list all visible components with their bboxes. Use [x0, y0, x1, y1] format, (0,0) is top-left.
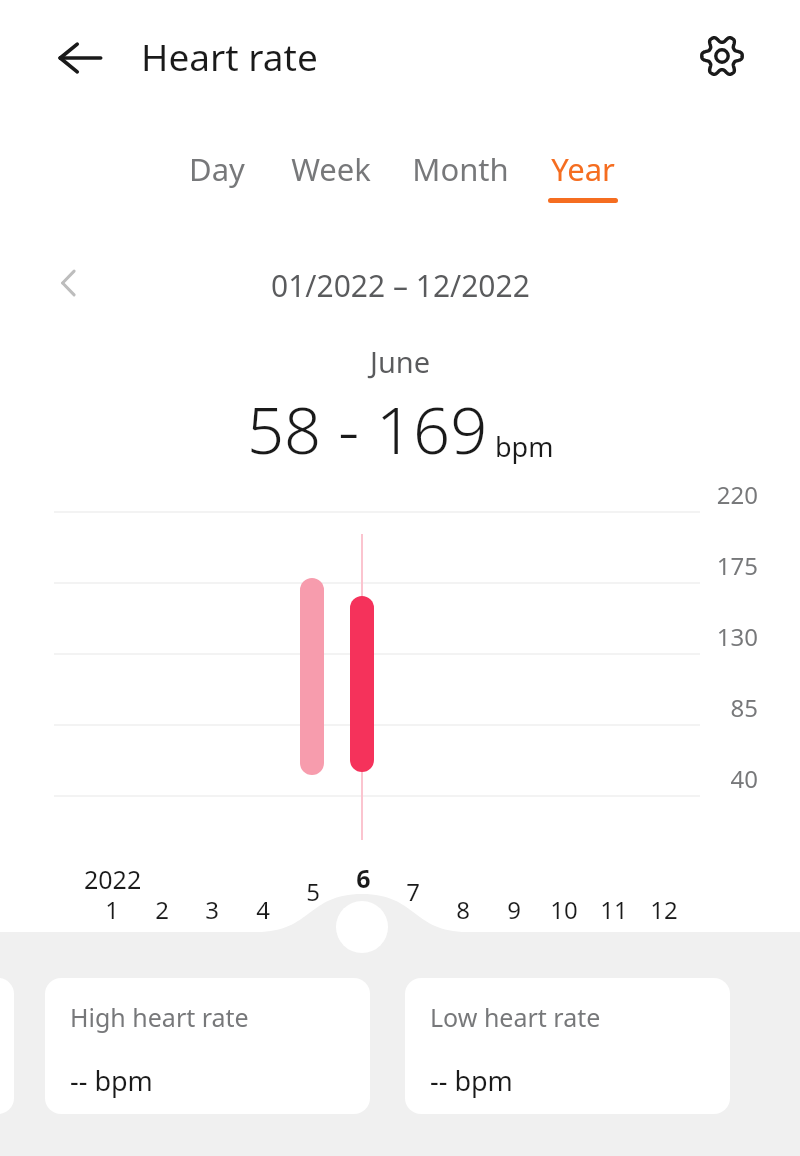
staticText: 2: [155, 893, 169, 926]
staticText: Day: [189, 148, 245, 190]
staticText: -- bpm: [430, 1062, 513, 1099]
button[interactable]: Settings: [684, 18, 760, 94]
button[interactable]: Low heart rate: [405, 978, 730, 1114]
button[interactable]: 7: [388, 875, 438, 915]
button[interactable]: 3: [187, 893, 237, 933]
staticText: Year: [551, 148, 615, 190]
staticText: Week: [291, 148, 371, 190]
staticText: 85: [730, 691, 758, 724]
button[interactable]: 8: [438, 893, 488, 933]
button[interactable]: 10: [539, 893, 589, 933]
staticText: Heart rate: [141, 31, 318, 81]
staticText: -- bpm: [70, 1062, 153, 1099]
button[interactable]: 9: [489, 893, 539, 933]
staticText: High heart rate: [70, 1000, 249, 1034]
button[interactable]: 5: [288, 875, 338, 915]
staticText: Month: [412, 148, 509, 190]
staticText: 58 - 169: [247, 385, 488, 474]
button[interactable]: Year: [533, 148, 633, 214]
button[interactable]: 2: [137, 893, 187, 933]
staticText: 175: [716, 549, 758, 582]
staticText: 01/2022 – 12/2022: [271, 265, 530, 306]
button[interactable]: 6: [338, 861, 388, 901]
staticText: 11: [600, 893, 628, 926]
staticText: 10: [550, 893, 578, 926]
staticText: 7: [406, 875, 420, 908]
staticText: Low heart rate: [430, 1000, 601, 1034]
button[interactable]: 12: [639, 893, 689, 933]
staticText: 6: [356, 861, 371, 895]
button[interactable]: Day: [170, 148, 264, 214]
staticText: 130: [716, 620, 758, 653]
button[interactable]: Previous year: [38, 252, 100, 314]
staticText: 220: [716, 478, 758, 511]
button[interactable]: Week: [272, 148, 390, 214]
staticText: 40: [730, 762, 758, 795]
staticText: 9: [507, 893, 521, 926]
button[interactable]: 4: [238, 893, 288, 933]
staticText: 1: [105, 893, 119, 926]
button[interactable]: [0, 978, 14, 1114]
button[interactable]: Month: [394, 148, 526, 214]
button[interactable]: 11: [589, 893, 639, 933]
button[interactable]: High heart rate: [45, 978, 370, 1114]
staticText: 12: [650, 893, 678, 926]
staticText: 8: [456, 893, 470, 926]
button[interactable]: Back: [44, 22, 116, 94]
staticText: 2022: [84, 862, 142, 896]
staticText: 3: [205, 893, 219, 926]
staticText: 5: [306, 875, 320, 908]
staticText: June: [370, 342, 431, 381]
staticText: 4: [256, 893, 270, 926]
button[interactable]: 1: [87, 893, 137, 933]
staticText: bpm: [495, 428, 554, 465]
